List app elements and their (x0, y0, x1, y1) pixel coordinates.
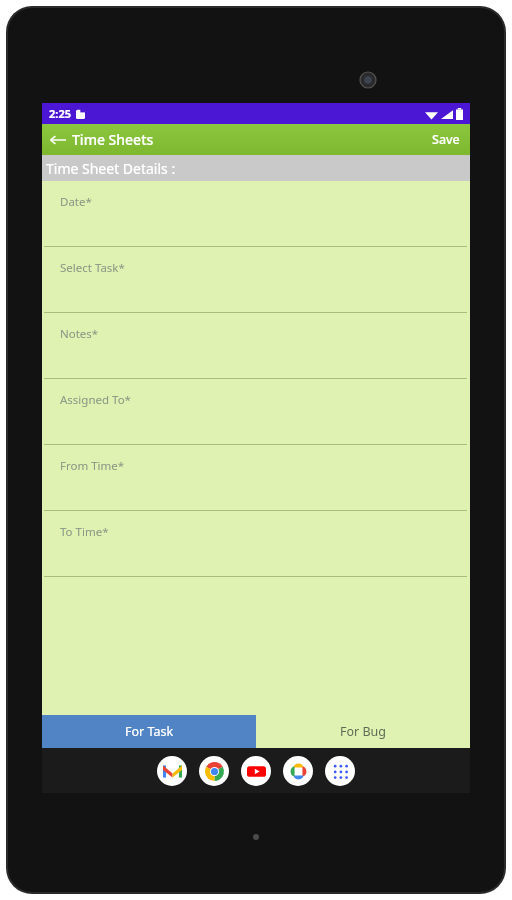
button[interactable]: All apps (325, 756, 355, 786)
staticText: Date* (60, 194, 92, 210)
staticText: For Bug (340, 723, 387, 740)
button[interactable]: Back (42, 126, 162, 153)
staticText: Time Sheet Details : (46, 159, 176, 178)
staticText: Time Sheets (72, 130, 154, 149)
button[interactable]: For Bug (256, 715, 470, 748)
staticText: Select Task* (60, 260, 125, 276)
staticText: For Task (125, 723, 174, 740)
staticText: To Time* (60, 524, 109, 540)
staticText: Save (432, 131, 460, 148)
button[interactable]: Assigned To* (42, 379, 470, 445)
staticText: Assigned To* (60, 392, 131, 408)
button[interactable]: Save (422, 125, 470, 154)
staticText: Notes* (60, 326, 99, 342)
button[interactable]: Date* (42, 181, 470, 247)
button[interactable]: Notes* (42, 313, 470, 379)
button[interactable]: Chrome (199, 756, 229, 786)
button[interactable]: From Time* (42, 445, 470, 511)
staticText: From Time* (60, 458, 125, 474)
button[interactable]: Select Task* (42, 247, 470, 313)
button[interactable]: Gmail (157, 756, 187, 786)
button[interactable]: To Time* (42, 511, 470, 577)
staticText: 2:25 (49, 106, 71, 121)
button[interactable]: YouTube (241, 756, 271, 786)
button[interactable]: For Task (42, 715, 256, 748)
other: Back (50, 134, 66, 146)
button[interactable]: Photos (283, 756, 313, 786)
